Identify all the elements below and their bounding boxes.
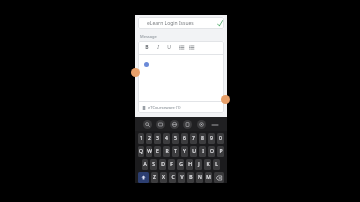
staticText: F	[170, 161, 173, 168]
staticText: Y	[183, 148, 186, 155]
staticText: 1	[140, 135, 143, 142]
button[interactable]: 8	[199, 133, 206, 144]
button[interactable]: C	[169, 172, 176, 183]
button[interactable]: K	[204, 159, 211, 170]
staticText: S	[152, 161, 155, 168]
button[interactable]: U	[165, 44, 172, 51]
staticText: L	[215, 161, 218, 168]
button[interactable]: Shift	[138, 172, 149, 183]
button[interactable]: O	[208, 146, 215, 157]
button[interactable]: I	[154, 44, 161, 51]
button[interactable]: B	[187, 172, 194, 183]
staticText: 5	[174, 135, 177, 142]
button[interactable]: Numbered list	[188, 44, 195, 51]
staticText: I	[202, 148, 204, 155]
staticText: Message	[140, 34, 157, 39]
button[interactable]: I	[199, 146, 206, 157]
staticText: C	[171, 174, 175, 181]
button[interactable]: 4	[163, 133, 170, 144]
button[interactable]: A	[142, 159, 148, 170]
button[interactable]: F	[168, 159, 175, 170]
staticText: U	[167, 44, 171, 51]
button[interactable]: L	[213, 159, 220, 170]
button[interactable]: X	[160, 172, 167, 183]
staticText: O	[210, 148, 214, 155]
staticText: N	[198, 174, 202, 181]
staticText: Z	[153, 174, 156, 181]
button[interactable]: Bulleted list	[178, 44, 185, 51]
button[interactable]: V	[178, 172, 185, 183]
button[interactable]: P	[217, 146, 224, 157]
button[interactable]: Y	[181, 146, 188, 157]
staticText: I	[157, 44, 159, 51]
button[interactable]: Q	[138, 146, 144, 157]
button[interactable]: Search	[143, 120, 152, 129]
staticText: E	[156, 148, 159, 155]
button[interactable]: S	[150, 159, 157, 170]
staticText: A	[143, 161, 147, 168]
staticText: 8	[201, 135, 204, 142]
button[interactable]	[138, 55, 224, 101]
staticText: M	[206, 174, 211, 181]
staticText: R	[165, 148, 169, 155]
staticText: D	[161, 161, 165, 168]
button[interactable]: Clipboard	[183, 120, 192, 129]
button[interactable]: U	[190, 146, 197, 157]
button[interactable]: R	[163, 146, 170, 157]
staticText: B	[189, 174, 193, 181]
staticText: Q	[139, 148, 143, 155]
staticText: 9	[210, 135, 213, 142]
button[interactable]: 5	[172, 133, 179, 144]
staticText: K	[206, 161, 210, 168]
button[interactable]: Accent marker left	[131, 68, 140, 77]
button[interactable]: B	[143, 44, 150, 51]
button[interactable]: N	[196, 172, 203, 183]
button[interactable]: eLearn Login Issues	[138, 17, 224, 29]
button[interactable]: Translate	[170, 120, 179, 129]
staticText: eTCourseware (1)	[148, 105, 181, 110]
button[interactable]: E	[154, 146, 161, 157]
staticText: 0	[219, 135, 222, 142]
staticText: 6	[183, 135, 186, 142]
staticText: 7	[192, 135, 195, 142]
button[interactable]: GIF	[156, 120, 165, 129]
button[interactable]: 7	[190, 133, 197, 144]
button[interactable]: 2	[146, 133, 152, 144]
button[interactable]: eTCourseware (1)	[142, 102, 224, 113]
button[interactable]: Z	[151, 172, 158, 183]
staticText: P	[219, 148, 223, 155]
staticText: 4	[165, 135, 168, 142]
staticText: V	[180, 174, 184, 181]
button[interactable]: W	[146, 146, 152, 157]
button[interactable]: J	[195, 159, 202, 170]
staticText: T	[174, 148, 177, 155]
staticText: X	[162, 174, 165, 181]
staticText: G	[179, 161, 183, 168]
staticText: 3	[156, 135, 159, 142]
staticText: eLearn Login Issues	[147, 20, 194, 27]
staticText: B	[145, 44, 149, 51]
staticText: J	[198, 161, 200, 168]
staticText: H	[188, 161, 192, 168]
button[interactable]: T	[172, 146, 179, 157]
button[interactable]: 9	[208, 133, 215, 144]
staticText: W	[147, 148, 152, 155]
staticText: 2	[148, 135, 151, 142]
button[interactable]: Send	[216, 19, 224, 27]
staticText: U	[192, 148, 196, 155]
button[interactable]: M	[205, 172, 212, 183]
button[interactable]: Settings	[197, 120, 206, 129]
button[interactable]: 3	[154, 133, 161, 144]
button[interactable]: 6	[181, 133, 188, 144]
button[interactable]: H	[186, 159, 193, 170]
button[interactable]: 0	[217, 133, 224, 144]
button[interactable]: G	[177, 159, 184, 170]
button[interactable]: More options	[210, 120, 219, 129]
button[interactable]: 1	[138, 133, 144, 144]
button[interactable]: Accent marker right	[221, 95, 230, 104]
button[interactable]: Backspace	[214, 172, 224, 183]
button[interactable]: D	[159, 159, 166, 170]
